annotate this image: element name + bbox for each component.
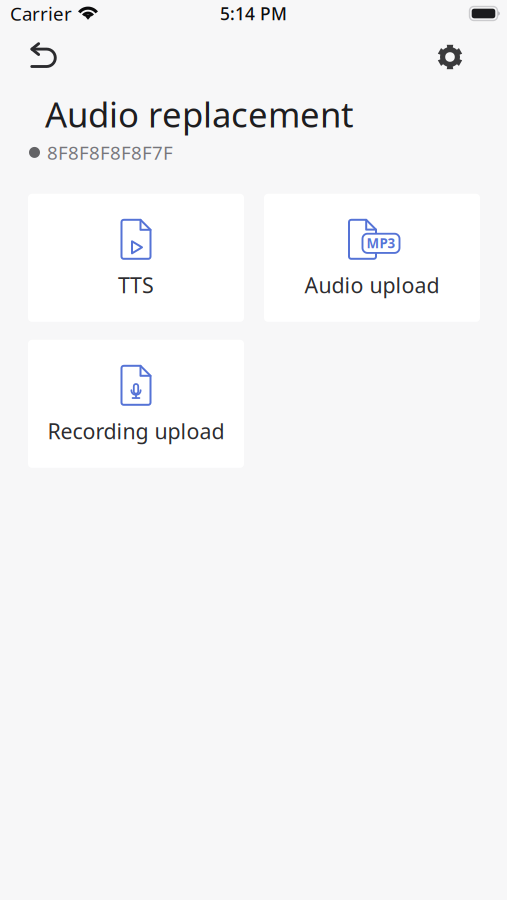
staticText: MP3 — [366, 234, 395, 252]
staticText: Audio replacement — [45, 91, 354, 137]
staticText: 5:14 PM — [220, 2, 287, 25]
staticText: TTS — [118, 271, 154, 299]
staticText: 8F8F8F8F8F7F — [47, 140, 173, 165]
button[interactable]: MP3 — [264, 194, 480, 322]
button[interactable]: Back — [19, 28, 69, 73]
staticText: Audio upload — [304, 271, 439, 299]
staticText: Recording upload — [47, 417, 224, 445]
button[interactable]: Settings — [426, 28, 474, 74]
button[interactable]: TTS — [28, 194, 244, 322]
button[interactable]: Recording upload — [28, 340, 244, 468]
staticText: Carrier — [10, 1, 72, 26]
